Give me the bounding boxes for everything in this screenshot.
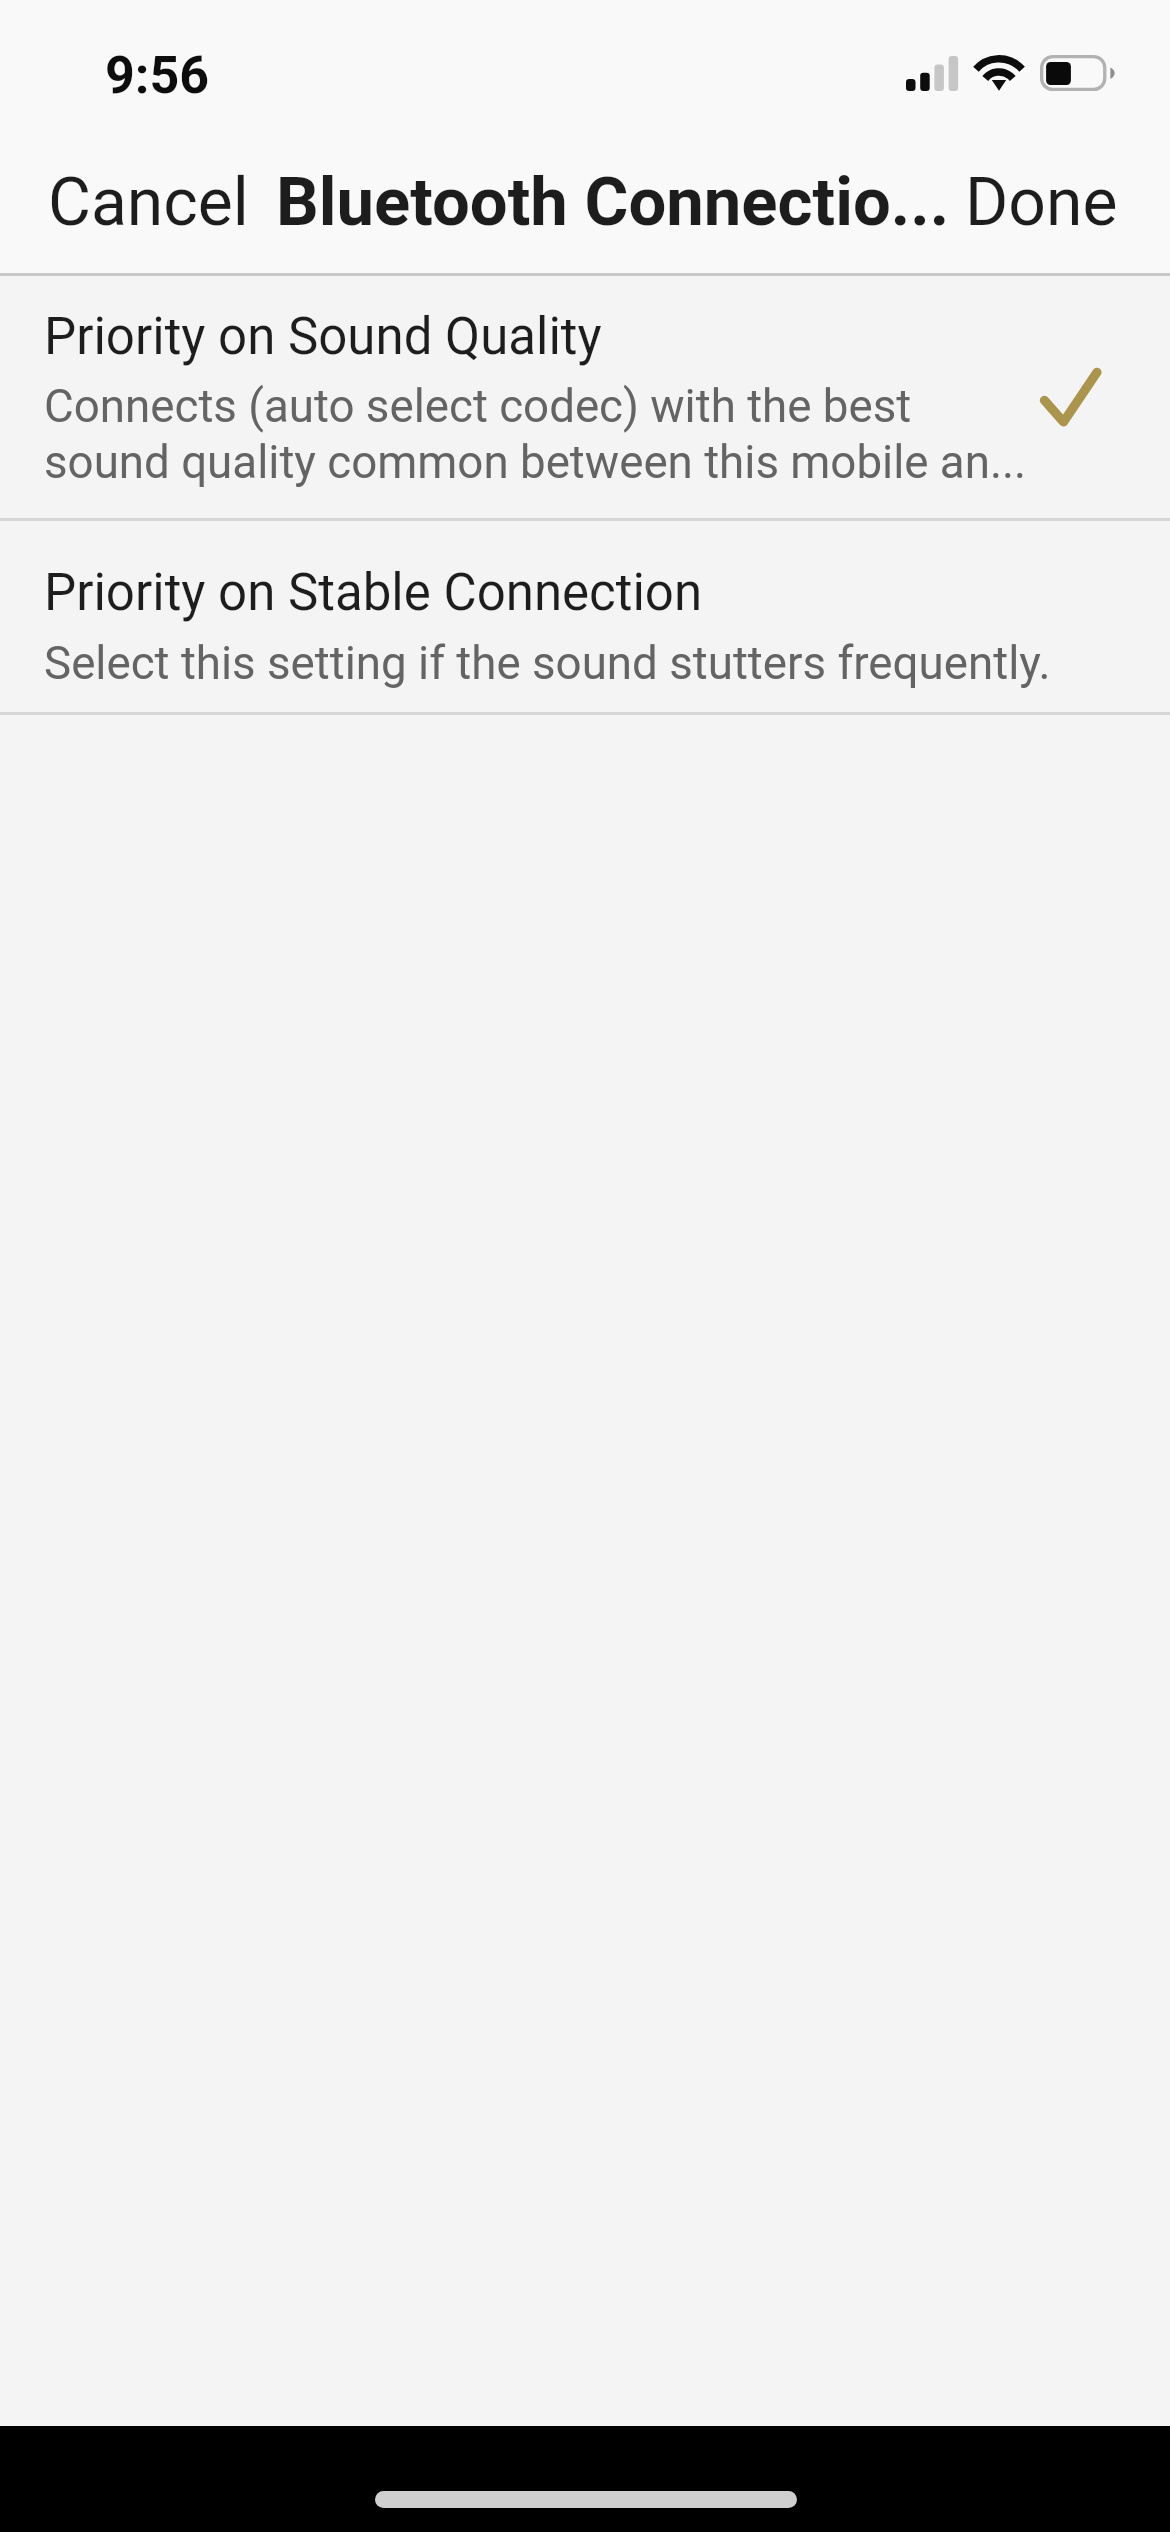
button[interactable]: Priority on Stable Connection [0, 521, 1170, 712]
other: Wi-Fi [975, 54, 1024, 91]
other: Battery [1040, 55, 1116, 91]
staticText: Done [965, 164, 1118, 241]
staticText: Bluetooth Connectio... [276, 163, 950, 242]
staticText: 9:56 [105, 45, 210, 106]
button[interactable]: Cancel [18, 146, 279, 259]
other: Selected [1039, 367, 1103, 430]
staticText: Priority on Sound Quality [44, 307, 602, 367]
staticText: Priority on Stable Connection [44, 563, 703, 623]
staticText: Select this setting if the sound stutter… [44, 637, 1051, 691]
other: Cellular signal [906, 56, 959, 91]
staticText: Connects (auto select codec) with the be… [44, 380, 1027, 489]
button[interactable]: Priority on Sound Quality [0, 276, 1170, 518]
staticText: Cancel [48, 164, 249, 241]
button[interactable]: Done [935, 146, 1148, 259]
